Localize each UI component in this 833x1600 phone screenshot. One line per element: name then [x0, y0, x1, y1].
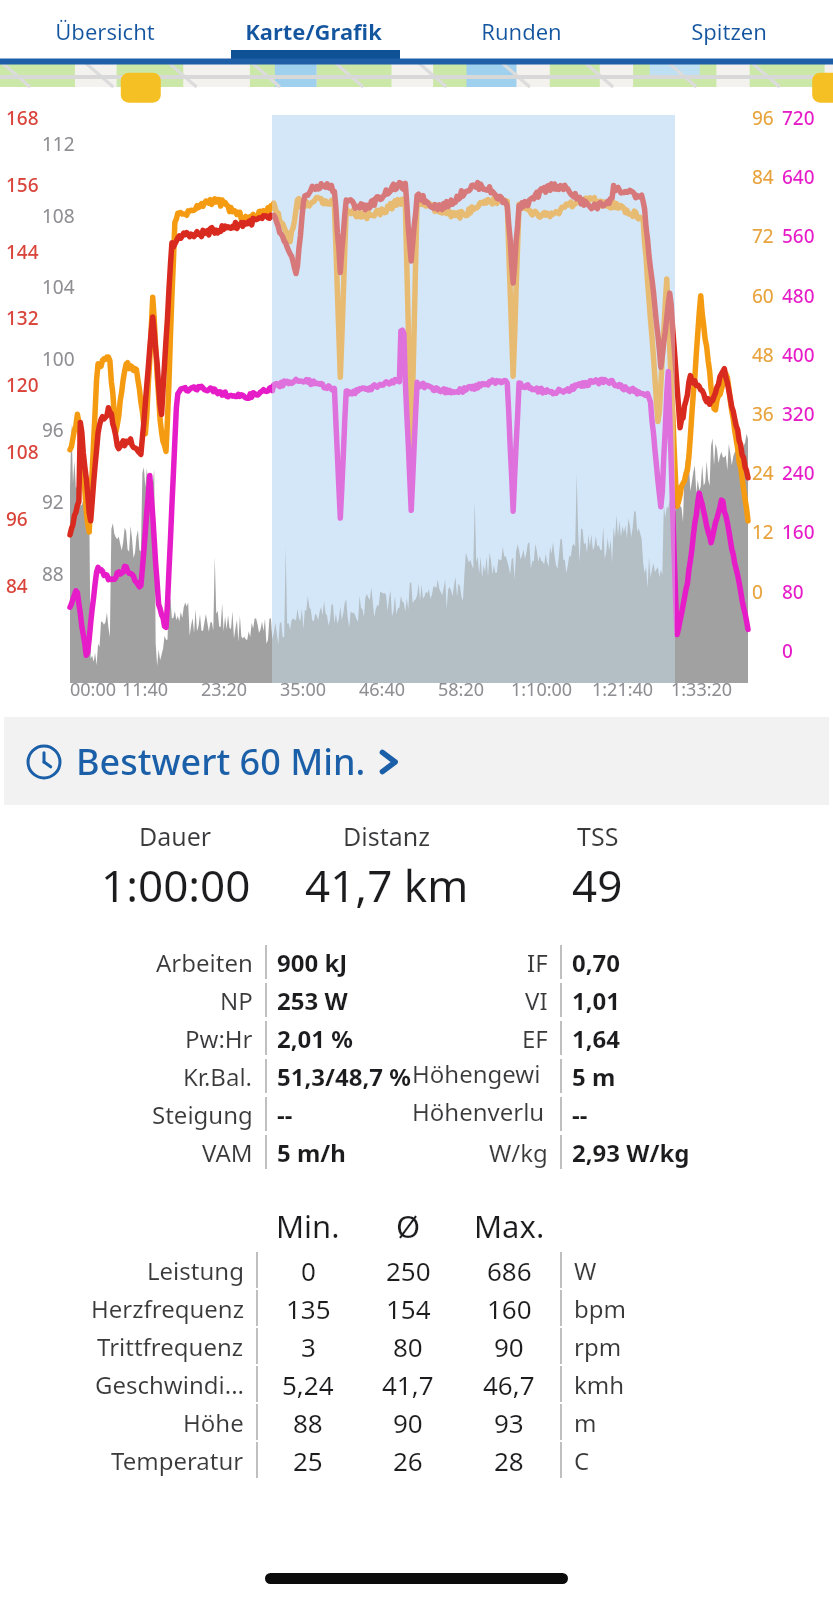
staticText: kmh: [574, 1368, 625, 1401]
staticText: Distanz: [343, 819, 430, 853]
button[interactable]: Spitzen: [625, 0, 833, 61]
staticText: 160: [487, 1291, 532, 1326]
staticText: 240: [782, 460, 815, 486]
staticText: Höhenverlust: [412, 1095, 548, 1133]
staticText: 3: [301, 1329, 316, 1364]
staticText: 135: [286, 1291, 331, 1326]
button[interactable]: Karte/Grafik: [209, 0, 417, 61]
staticText: 400: [782, 342, 815, 368]
staticText: 51,3/48,7 %: [277, 1060, 411, 1093]
staticText: 11:40: [122, 677, 169, 702]
staticText: 156: [6, 172, 39, 198]
staticText: Max.: [474, 1205, 545, 1247]
staticText: Min.: [276, 1205, 340, 1247]
staticText: 28: [494, 1443, 524, 1478]
staticText: --: [277, 1098, 293, 1131]
staticText: 72: [752, 223, 774, 249]
staticText: 560: [782, 223, 815, 249]
staticText: Trittfrequenz: [97, 1330, 244, 1363]
button[interactable]: Runden: [417, 0, 625, 61]
staticText: 0: [782, 638, 793, 664]
staticText: VAM: [202, 1136, 253, 1169]
staticText: Ø: [396, 1205, 421, 1247]
staticText: 96: [42, 417, 64, 443]
staticText: 168: [6, 105, 39, 131]
staticText: 46:40: [359, 677, 406, 702]
staticText: 25: [293, 1443, 323, 1478]
staticText: 720: [782, 105, 815, 131]
staticText: 2,93 W/kg: [572, 1136, 690, 1169]
staticText: 88: [42, 561, 64, 587]
staticText: --: [572, 1098, 588, 1131]
staticText: 41,7: [382, 1367, 434, 1402]
staticText: 96: [752, 105, 774, 131]
staticText: Steigung: [152, 1098, 253, 1131]
staticText: 46,7: [483, 1367, 535, 1402]
staticText: 0: [752, 579, 763, 605]
staticText: TSS: [577, 819, 619, 853]
staticText: Arbeiten: [156, 946, 253, 979]
staticText: W/kg: [489, 1136, 548, 1169]
staticText: 1,01: [572, 984, 621, 1017]
staticText: 80: [393, 1329, 423, 1364]
staticText: C: [574, 1444, 590, 1477]
staticText: NP: [220, 984, 253, 1017]
staticText: Karte/Grafik: [245, 16, 382, 46]
staticText: 154: [386, 1291, 431, 1326]
staticText: Höhe: [183, 1406, 244, 1439]
staticText: Dauer: [139, 819, 212, 853]
staticText: 1:33:20: [671, 677, 733, 702]
staticText: W: [574, 1254, 597, 1287]
staticText: 5,24: [282, 1367, 334, 1402]
staticText: 48: [752, 342, 774, 368]
staticText: Bestwert 60 Min.: [76, 737, 366, 786]
button[interactable]: Übersicht: [0, 0, 209, 61]
staticText: Pw:Hr: [185, 1022, 253, 1055]
staticText: bpm: [574, 1292, 626, 1325]
staticText: 96: [6, 506, 28, 532]
staticText: 36: [752, 401, 774, 427]
staticText: 2,01 %: [277, 1022, 353, 1055]
staticText: 88: [293, 1405, 323, 1440]
staticText: 93: [494, 1405, 524, 1440]
staticText: 90: [494, 1329, 524, 1364]
staticText: 58:20: [438, 677, 485, 702]
staticText: Runden: [481, 16, 562, 46]
staticText: 320: [782, 401, 815, 427]
staticText: Geschwindi...: [95, 1368, 244, 1401]
staticText: 0,70: [572, 946, 621, 979]
staticText: 1,64: [572, 1022, 621, 1055]
staticText: Spitzen: [691, 16, 767, 46]
staticText: 1:21:40: [592, 677, 654, 702]
staticText: 112: [42, 131, 75, 157]
staticText: 160: [782, 519, 815, 545]
staticText: Übersicht: [55, 16, 155, 46]
staticText: 5 m: [572, 1060, 616, 1093]
staticText: rpm: [574, 1330, 622, 1363]
staticText: 23:20: [201, 677, 248, 702]
staticText: 104: [42, 274, 75, 300]
staticText: IF: [527, 946, 548, 979]
staticText: 900 kJ: [277, 946, 348, 979]
staticText: 00:00: [70, 677, 117, 702]
staticText: 144: [6, 239, 39, 265]
staticText: m: [574, 1406, 597, 1439]
staticText: 250: [386, 1253, 431, 1288]
staticText: 1:10:00: [511, 677, 573, 702]
button[interactable]: Bestwert 60 Min.: [4, 717, 829, 805]
staticText: 100: [42, 346, 75, 372]
staticText: 120: [6, 372, 39, 398]
staticText: 35:00: [280, 677, 327, 702]
staticText: 80: [782, 579, 804, 605]
staticText: VI: [525, 984, 548, 1017]
staticText: Temperatur: [111, 1444, 244, 1477]
staticText: 24: [752, 460, 774, 486]
staticText: 253 W: [277, 984, 348, 1017]
staticText: 132: [6, 305, 39, 331]
staticText: 41,7 km: [305, 855, 469, 915]
staticText: 5 m/h: [277, 1136, 346, 1169]
staticText: Kr.Bal.: [183, 1060, 253, 1093]
staticText: 84: [6, 573, 28, 599]
staticText: 640: [782, 164, 815, 190]
staticText: EF: [522, 1022, 548, 1055]
